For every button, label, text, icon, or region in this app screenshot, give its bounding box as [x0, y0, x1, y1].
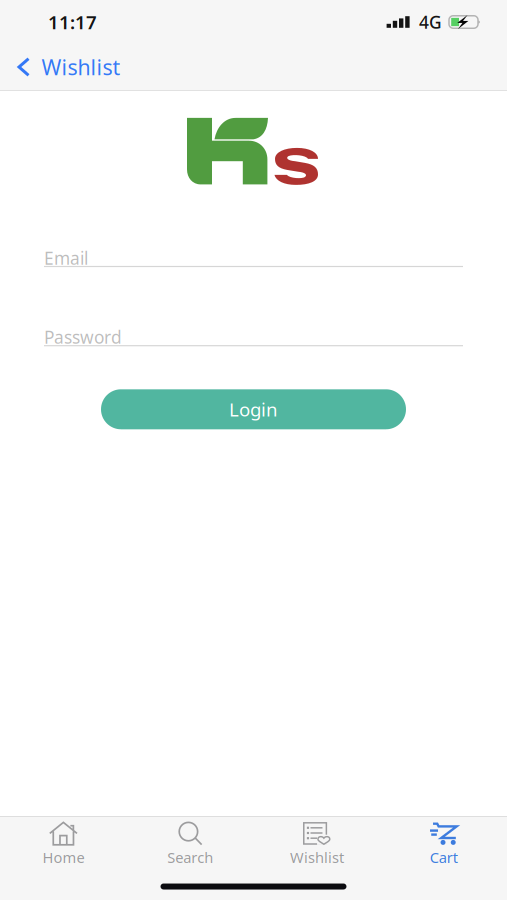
staticText: Wishlist [290, 848, 344, 867]
staticText: Home [42, 848, 84, 867]
staticText: Cart [430, 848, 458, 867]
staticText: 4G [419, 10, 442, 33]
button[interactable]: Home [0, 817, 127, 870]
staticText: Search [167, 848, 213, 867]
button[interactable]: Login [101, 389, 406, 429]
staticText: Email [44, 246, 88, 269]
staticText: Login [229, 397, 278, 422]
button[interactable]: Search [127, 817, 254, 870]
button[interactable]: Wishlist [0, 44, 134, 90]
staticText: Password [44, 326, 122, 349]
staticText: 11:17 [48, 10, 97, 34]
button[interactable]: Wishlist [253, 817, 380, 870]
staticText: Wishlist [41, 53, 120, 81]
button[interactable]: Cart [380, 817, 507, 870]
